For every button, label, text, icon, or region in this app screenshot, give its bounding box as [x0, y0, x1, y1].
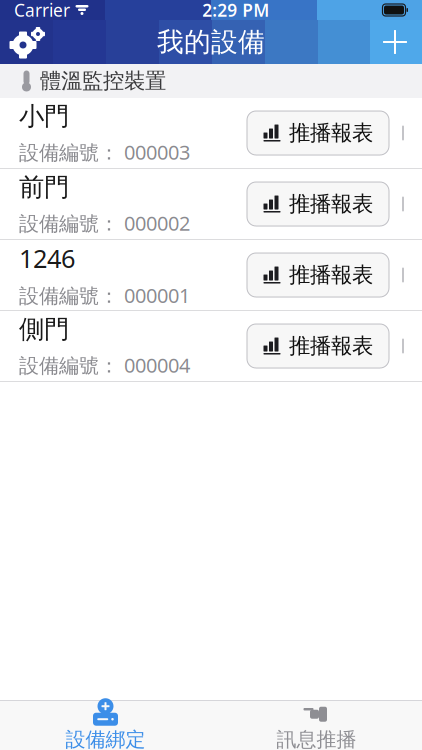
staticText: 側門	[19, 314, 69, 345]
staticText: 設備編號： 000003	[19, 139, 190, 165]
staticText: 推播報表	[289, 333, 373, 359]
staticText: 訊息推播	[276, 727, 356, 750]
button[interactable]: 訊息推播	[211, 701, 422, 750]
staticText: 前門	[19, 172, 69, 203]
staticText: 設備綁定	[65, 727, 145, 750]
staticText: 推播報表	[289, 262, 373, 288]
button[interactable]: 設備綁定	[0, 701, 211, 750]
button[interactable]: 推播報表	[247, 253, 389, 297]
staticText: 設備編號： 000001	[19, 282, 190, 309]
staticText: 2:29 PM	[202, 0, 269, 21]
button[interactable]: 推播報表	[247, 324, 389, 368]
staticText: 我的設備	[157, 26, 265, 58]
button[interactable]: 推播報表	[247, 182, 389, 226]
staticText: 體溫監控裝置	[40, 68, 166, 94]
staticText: 小門	[19, 101, 69, 132]
button[interactable]: 1246	[0, 240, 422, 310]
button[interactable]: 小門	[0, 98, 422, 168]
staticText: 設備編號： 000004	[19, 352, 190, 378]
staticText: 設備編號： 000002	[19, 210, 190, 236]
button[interactable]: 側門	[0, 311, 422, 381]
button[interactable]: 前門	[0, 169, 422, 239]
staticText: 推播報表	[289, 191, 373, 217]
staticText: 1246	[19, 241, 75, 275]
staticText: 推播報表	[289, 120, 373, 146]
button[interactable]: Add device	[368, 20, 422, 64]
staticText: Carrier	[14, 0, 70, 21]
button[interactable]: Settings	[0, 20, 54, 64]
button[interactable]: 推播報表	[247, 111, 389, 155]
